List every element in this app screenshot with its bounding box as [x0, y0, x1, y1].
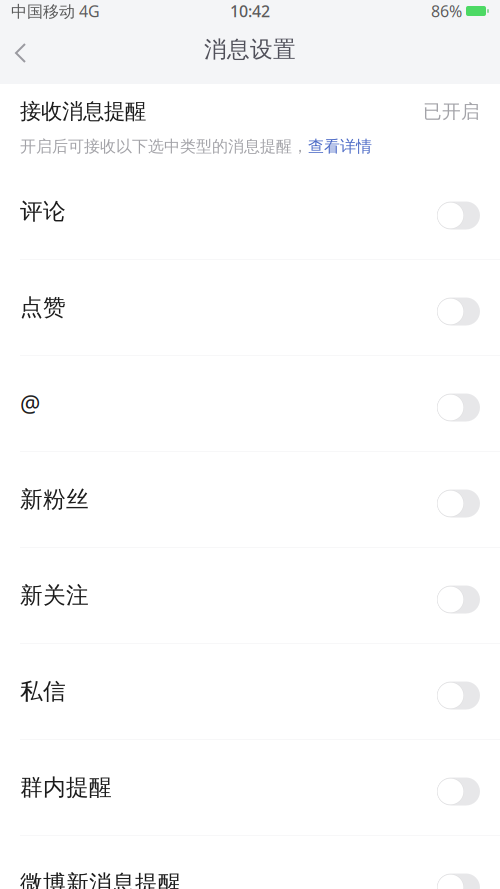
button[interactable]: 群内提醒: [0, 740, 500, 835]
staticText: 查看详情: [308, 137, 372, 156]
staticText: 群内提醒: [20, 774, 112, 801]
staticText: 新关注: [20, 582, 89, 609]
button[interactable]: 私信: [0, 644, 500, 739]
staticText: 10:42: [230, 0, 270, 22]
staticText: 私信: [20, 678, 66, 705]
staticText: 点赞: [20, 294, 66, 321]
staticText: 接收消息提醒: [20, 98, 146, 125]
button[interactable]: @: [0, 356, 500, 451]
button[interactable]: Back: [0, 31, 42, 75]
button[interactable]: 新关注: [0, 548, 500, 643]
button[interactable]: 点赞: [0, 260, 500, 355]
button[interactable]: 微博新消息提醒: [0, 836, 500, 889]
button[interactable]: 新粉丝: [0, 452, 500, 547]
staticText: 已开启: [423, 100, 480, 123]
staticText: 中国移动 4G: [11, 0, 100, 22]
staticText: @: [20, 388, 40, 418]
staticText: 86%: [431, 0, 462, 22]
staticText: 新粉丝: [20, 486, 89, 513]
button[interactable]: 评论: [0, 164, 500, 259]
staticText: 消息设置: [204, 36, 296, 63]
staticText: 微博新消息提醒: [20, 870, 181, 889]
staticText: 评论: [20, 198, 66, 225]
staticText: 开启后可接收以下选中类型的消息提醒，: [20, 137, 308, 156]
